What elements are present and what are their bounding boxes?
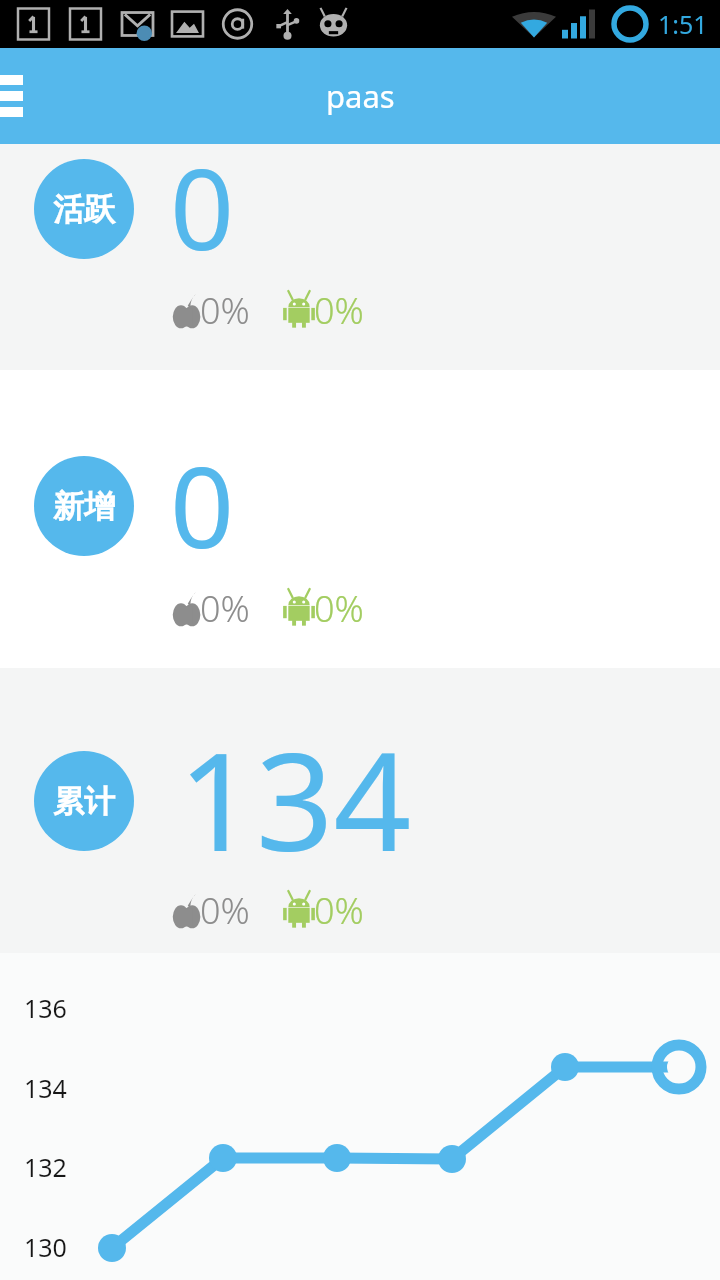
button[interactable]: 累计	[0, 668, 720, 953]
staticText: 132	[24, 1150, 67, 1184]
staticText: 134	[178, 706, 412, 891]
button[interactable]: 活跃	[0, 144, 720, 370]
staticText: 1:51	[658, 7, 708, 41]
button[interactable]: Open navigation menu	[0, 48, 44, 144]
staticText: 0%	[314, 286, 364, 335]
staticText: 136	[24, 991, 67, 1025]
staticText: 130	[24, 1230, 67, 1264]
staticText: 134	[24, 1071, 67, 1105]
staticText: 0%	[314, 584, 364, 633]
staticText: 0%	[200, 286, 250, 335]
staticText: 0%	[314, 886, 364, 935]
staticText: 0%	[200, 584, 250, 633]
staticText: 新增	[53, 487, 115, 526]
staticText: 0%	[200, 886, 250, 935]
staticText: 0	[170, 130, 235, 283]
button[interactable]: 新增	[0, 370, 720, 668]
staticText: 累计	[53, 782, 115, 821]
staticText: 0	[170, 428, 235, 581]
staticText: paas	[326, 75, 395, 117]
staticText: 活跃	[53, 190, 115, 229]
